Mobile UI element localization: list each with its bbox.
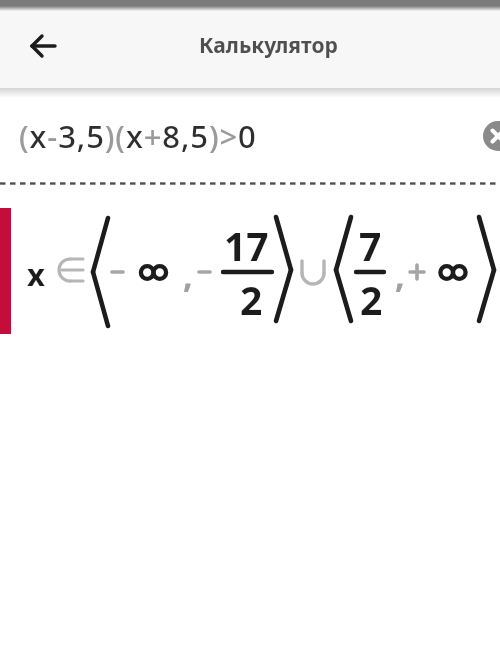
staticText: 2: [360, 273, 383, 326]
button[interactable]: [481, 119, 500, 153]
button[interactable]: (x-3,5)(x+8,5)>0: [0, 98, 500, 174]
staticText: x: [27, 253, 45, 295]
button[interactable]: [0, 200, 500, 340]
staticText: Калькулятор: [199, 31, 338, 60]
button[interactable]: [19, 22, 67, 70]
staticText: (x-3,5)(x+8,5)>0: [19, 115, 257, 157]
staticText: ,: [395, 252, 405, 298]
staticText: 2: [240, 273, 263, 326]
staticText: ,: [183, 252, 193, 298]
staticText: 7: [359, 219, 382, 272]
staticText: 17: [224, 219, 269, 272]
